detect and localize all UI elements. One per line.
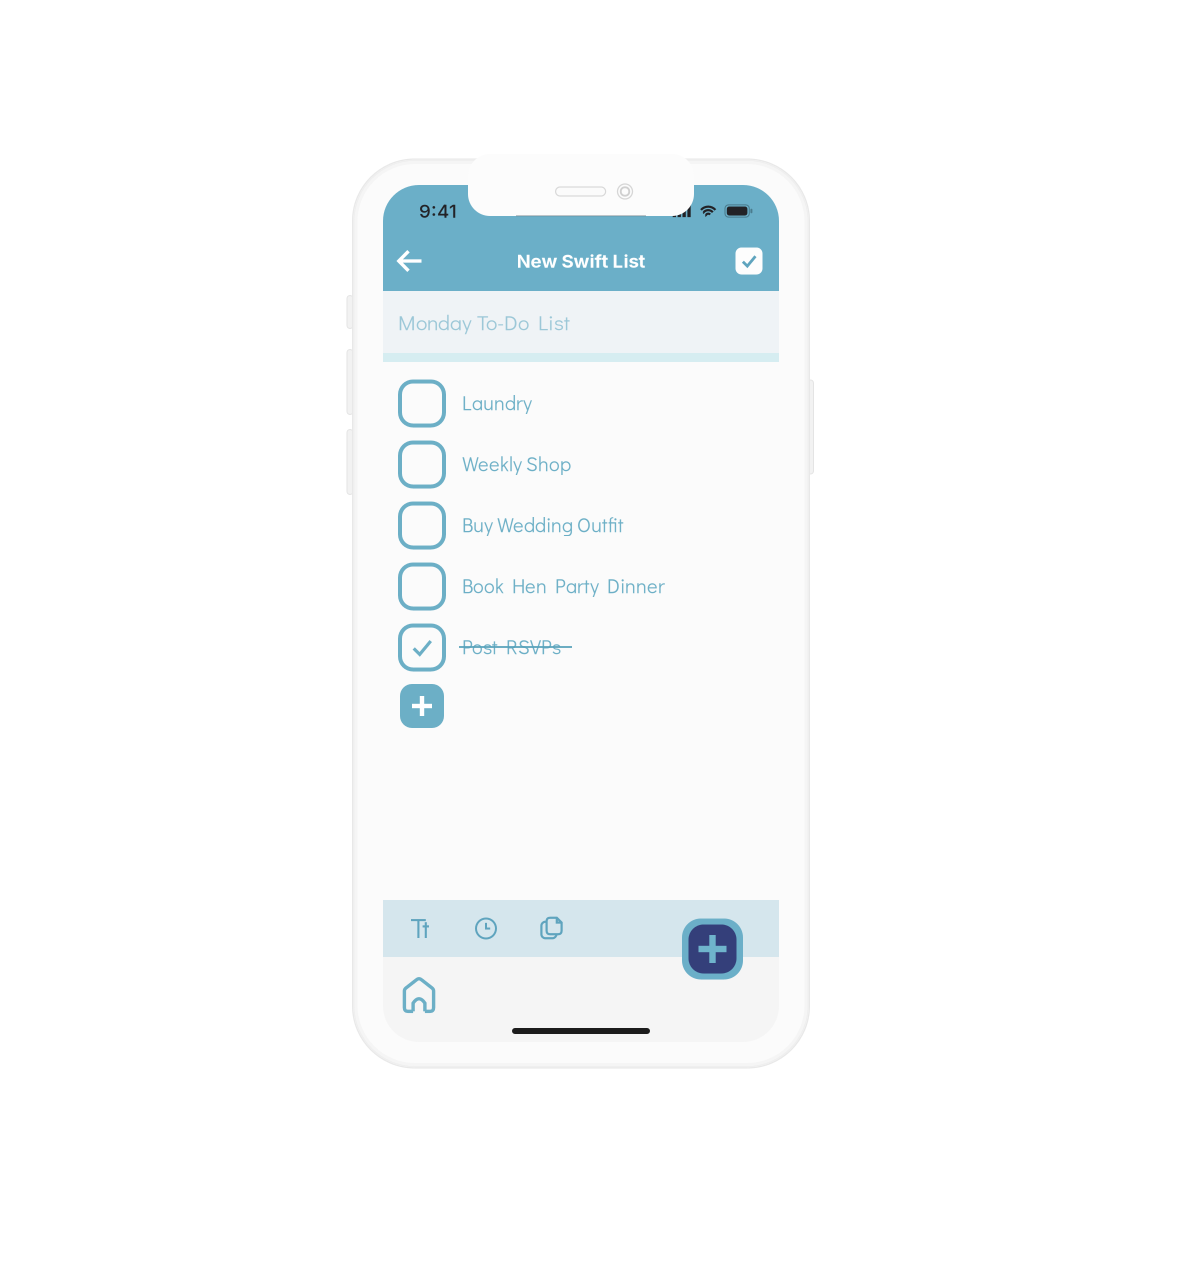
staticText: Monday To-Do List (398, 308, 570, 336)
button[interactable]: Reminder (453, 900, 519, 957)
button[interactable]: Back (383, 238, 441, 284)
button[interactable]: Add item (400, 678, 766, 734)
staticText: New Swift List (516, 250, 645, 272)
button[interactable]: Laundry (400, 373, 766, 434)
button[interactable]: Book Hen Party Dinner (400, 556, 766, 617)
button[interactable]: Home (394, 972, 444, 1018)
button[interactable]: Weekly Shop (400, 434, 766, 495)
staticText: Post RSVPs (462, 633, 561, 660)
button[interactable]: Duplicate (519, 900, 585, 957)
staticText: Weekly Shop (462, 450, 571, 477)
staticText: Buy Wedding Outfit (462, 511, 624, 538)
staticText: Book Hen Party Dinner (462, 572, 665, 599)
button[interactable]: New item (682, 918, 743, 979)
button[interactable]: Buy Wedding Outfit (400, 495, 766, 556)
staticText: Laundry (462, 389, 532, 416)
staticText: 9:41 (419, 200, 457, 222)
button[interactable]: Save list (727, 238, 779, 284)
button[interactable]: Post RSVPs (400, 617, 766, 678)
button[interactable]: Text style (387, 900, 453, 957)
